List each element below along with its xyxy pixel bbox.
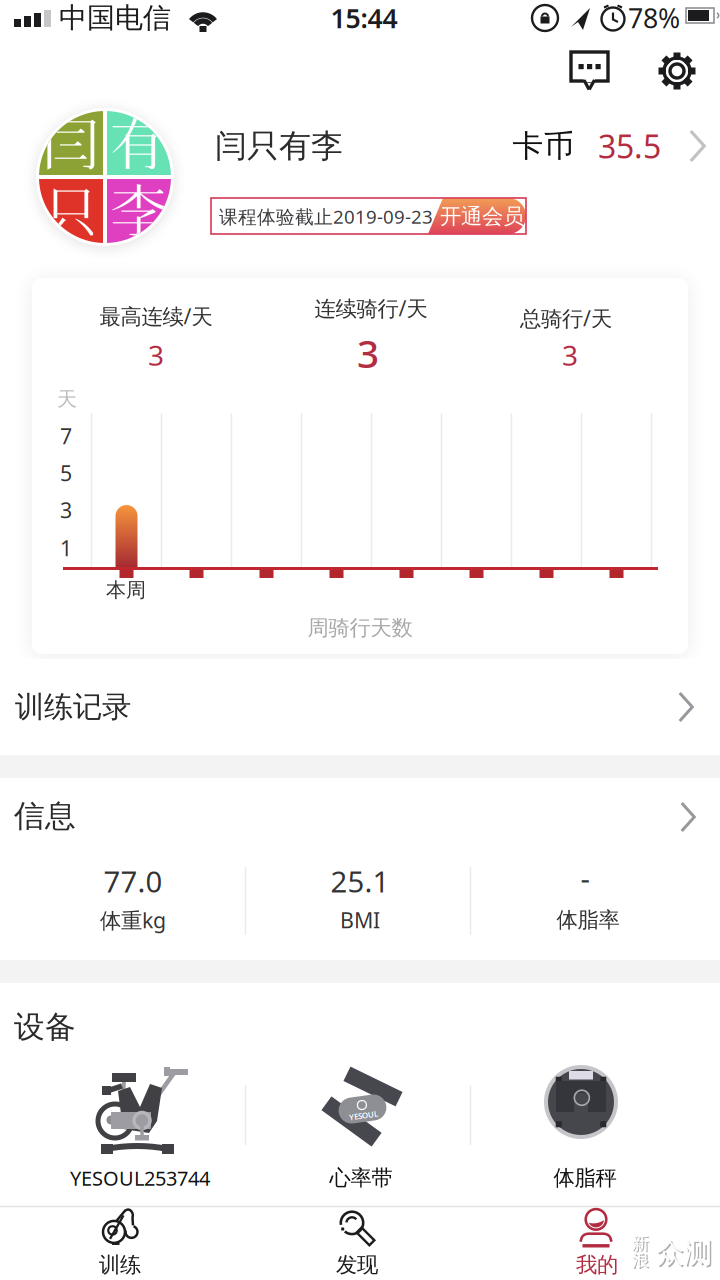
staticText: 课程体验截止2019-09-23 — [219, 204, 433, 229]
staticText: 浪 — [631, 1249, 648, 1271]
staticText: 最高连续/天 — [99, 302, 212, 330]
staticText: YESOUL253744 — [70, 1165, 210, 1191]
staticText: 开通会员 — [440, 203, 524, 230]
staticText: 设备 — [14, 1008, 76, 1046]
staticText: - — [580, 858, 589, 897]
staticText: 心率带 — [329, 1165, 392, 1191]
button[interactable]: Profile — [36, 102, 356, 252]
button[interactable]: 我的 — [507, 1208, 687, 1278]
staticText: 新 — [633, 1234, 650, 1255]
staticText: 本周 — [106, 578, 146, 602]
button[interactable]: Settings — [654, 48, 700, 94]
staticText: 周骑行天数 — [307, 615, 412, 641]
button[interactable]: 信息 — [0, 778, 720, 854]
staticText: 体脂率 — [556, 907, 619, 933]
button[interactable]: 体脂秤 — [474, 1060, 694, 1196]
staticText: 闫 — [41, 107, 100, 179]
button[interactable]: 训练记录 — [0, 659, 720, 755]
staticText: 35.5 — [598, 125, 661, 167]
staticText: 训练记录 — [15, 689, 131, 725]
button[interactable]: 卡币 35.5 — [512, 116, 705, 176]
staticText: 5 — [60, 459, 72, 487]
staticText: 中国电信 — [59, 1, 171, 35]
staticText: 77.0 — [103, 861, 162, 900]
staticText: 7 — [60, 422, 72, 450]
button[interactable]: Messages — [569, 49, 611, 95]
staticText: 3 — [148, 336, 164, 374]
button[interactable]: YESOUL253744 — [28, 1060, 253, 1196]
staticText: YESOUL — [348, 1110, 377, 1121]
staticText: 训练 — [99, 1252, 141, 1278]
staticText: 连续骑行/天 — [314, 294, 427, 322]
staticText: 众测 — [657, 1237, 713, 1272]
staticText: 我的 — [576, 1252, 618, 1278]
button[interactable]: 发现 — [267, 1208, 447, 1278]
staticText: 浪 — [633, 1251, 650, 1272]
button[interactable]: YESOUL — [251, 1060, 471, 1196]
staticText: 25.1 — [330, 861, 389, 900]
staticText: 1 — [60, 534, 72, 562]
staticText: 卡币 — [512, 127, 574, 165]
staticText: 新 — [631, 1232, 648, 1254]
staticText: 3 — [357, 327, 379, 379]
staticText: 3 — [562, 336, 578, 374]
staticText: 众测 — [656, 1236, 712, 1270]
button[interactable]: 训练 — [30, 1208, 210, 1278]
staticText: 有 — [109, 107, 168, 179]
staticText: BMI — [340, 906, 380, 934]
staticText: 78% — [628, 0, 680, 36]
staticText: 只 — [41, 175, 100, 247]
staticText: 总骑行/天 — [520, 304, 612, 332]
button[interactable]: 课程体验截止2019-09-23 — [210, 197, 527, 235]
staticText: 体重kg — [100, 906, 166, 934]
staticText: 闫只有李 — [215, 126, 343, 166]
staticText: 天 — [57, 387, 77, 411]
staticText: 3 — [60, 496, 72, 524]
staticText: 信息 — [14, 797, 76, 835]
staticText: 李 — [109, 175, 168, 247]
staticText: 体脂秤 — [553, 1165, 616, 1191]
staticText: 15:44 — [330, 0, 397, 36]
staticText: 发现 — [336, 1252, 378, 1278]
